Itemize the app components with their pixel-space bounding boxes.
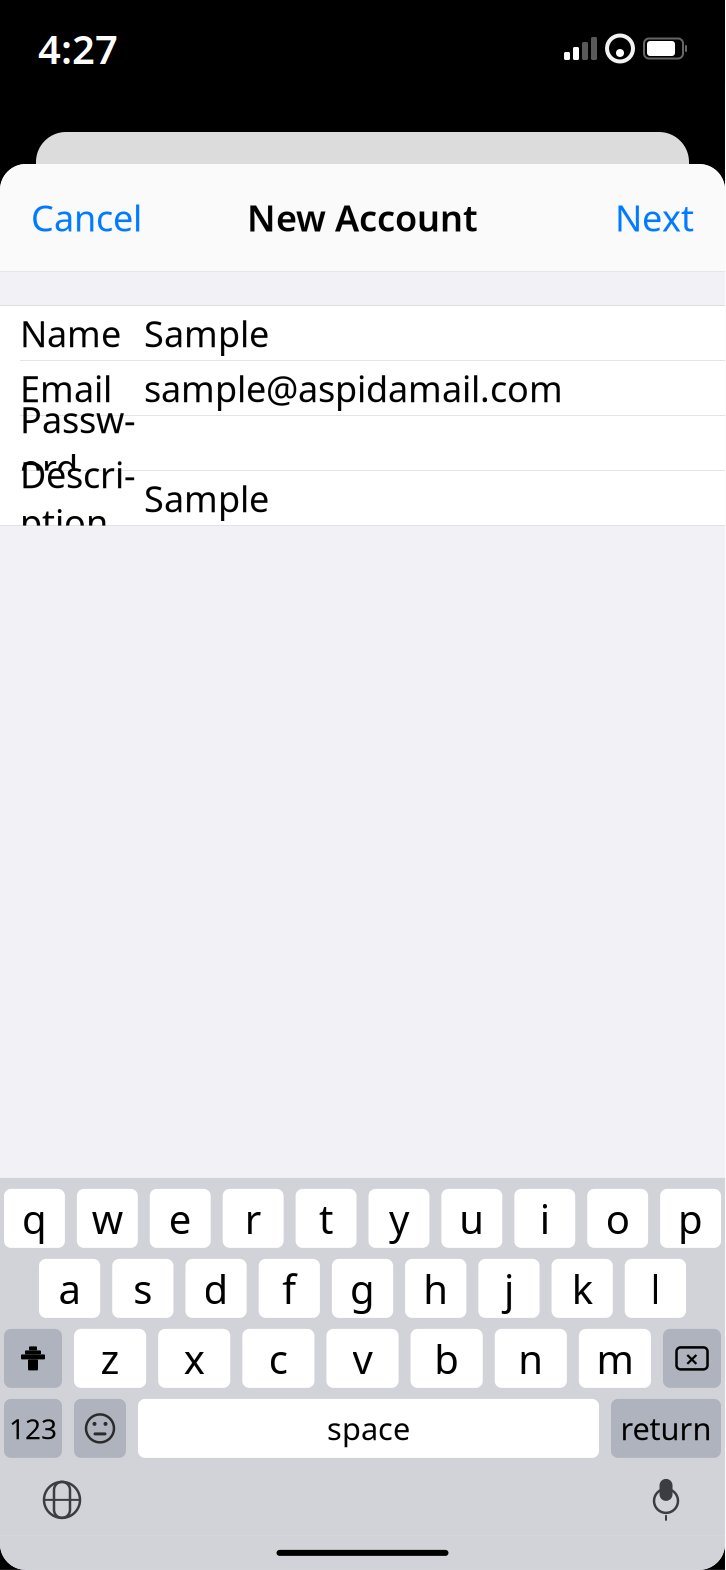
staticText: r (245, 1192, 262, 1245)
button[interactable]: v (326, 1329, 398, 1388)
button[interactable]: y (368, 1189, 429, 1248)
staticText: z (101, 1332, 120, 1385)
staticText: l (650, 1262, 660, 1315)
staticText: × (685, 1342, 699, 1374)
button[interactable]: n (495, 1329, 567, 1388)
staticText: c (269, 1332, 288, 1385)
staticText: h (423, 1262, 448, 1315)
button[interactable]: r (223, 1189, 284, 1248)
staticText: d (204, 1262, 229, 1315)
staticText: space (327, 1408, 410, 1449)
staticText: s (133, 1262, 152, 1315)
button[interactable]: h (405, 1259, 466, 1318)
staticText: k (572, 1262, 593, 1315)
button[interactable]: i (514, 1189, 575, 1248)
staticText: Name (20, 309, 121, 357)
button[interactable]: Cancel (11, 184, 162, 251)
button[interactable]: e (150, 1189, 211, 1248)
button[interactable]: Delete (663, 1329, 721, 1388)
staticText: Cancel (31, 194, 142, 241)
button[interactable]: Dictation (627, 1470, 705, 1530)
staticText: u (459, 1192, 484, 1245)
button[interactable]: Password (0, 416, 725, 470)
button[interactable]: space (138, 1399, 599, 1458)
button[interactable]: Description (0, 471, 725, 525)
staticText: w (92, 1192, 123, 1245)
staticText: Sample (144, 474, 269, 522)
button[interactable]: f (259, 1259, 320, 1318)
staticText: n (518, 1332, 543, 1385)
staticText: x (184, 1332, 205, 1385)
button[interactable]: t (296, 1189, 356, 1248)
staticText: e (169, 1192, 192, 1245)
staticText: y (389, 1192, 409, 1245)
staticText: sample@aspidamail.com (144, 364, 563, 412)
button[interactable]: a (39, 1259, 100, 1318)
button[interactable]: q (4, 1189, 65, 1248)
button[interactable]: return (611, 1399, 721, 1458)
button[interactable]: l (625, 1259, 686, 1318)
staticText: f (282, 1262, 296, 1315)
button[interactable]: Shift (4, 1329, 62, 1388)
button[interactable]: w (77, 1189, 138, 1248)
staticText: 4:27 (38, 22, 118, 75)
button[interactable]: d (185, 1259, 247, 1318)
staticText: return (620, 1408, 711, 1449)
staticText: g (350, 1262, 375, 1315)
staticText: 123 (9, 1410, 57, 1447)
button[interactable]: c (242, 1329, 314, 1388)
button[interactable]: Name (0, 306, 725, 360)
button[interactable]: o (587, 1189, 648, 1248)
staticText: p (678, 1192, 703, 1245)
button[interactable]: s (112, 1259, 173, 1318)
staticText: Password (20, 395, 136, 491)
staticText: Email (20, 364, 112, 412)
button[interactable]: b (411, 1329, 483, 1388)
button[interactable]: Next keyboard (20, 1470, 104, 1530)
staticText: i (540, 1192, 550, 1245)
button[interactable]: u (441, 1189, 502, 1248)
button[interactable]: Emoji (74, 1399, 126, 1458)
button[interactable]: x (158, 1329, 230, 1388)
staticText: m (596, 1332, 633, 1385)
button[interactable]: p (660, 1189, 721, 1248)
staticText: t (319, 1192, 333, 1245)
button[interactable]: m (579, 1329, 651, 1388)
button[interactable]: g (332, 1259, 393, 1318)
staticText: q (22, 1192, 47, 1245)
staticText: j (504, 1262, 514, 1315)
staticText: o (606, 1192, 630, 1245)
button[interactable]: 123 (4, 1399, 62, 1458)
button[interactable]: j (478, 1259, 539, 1318)
staticText: a (59, 1262, 81, 1315)
staticText: Sample (144, 309, 269, 357)
staticText: Next (615, 194, 694, 241)
button[interactable]: z (74, 1329, 146, 1388)
staticText: Description (20, 450, 136, 546)
button[interactable]: Email (0, 361, 725, 415)
button[interactable]: k (552, 1259, 613, 1318)
staticText: b (434, 1332, 459, 1385)
staticText: New Account (247, 194, 478, 241)
staticText: v (352, 1332, 372, 1385)
button[interactable]: Next (595, 184, 714, 251)
